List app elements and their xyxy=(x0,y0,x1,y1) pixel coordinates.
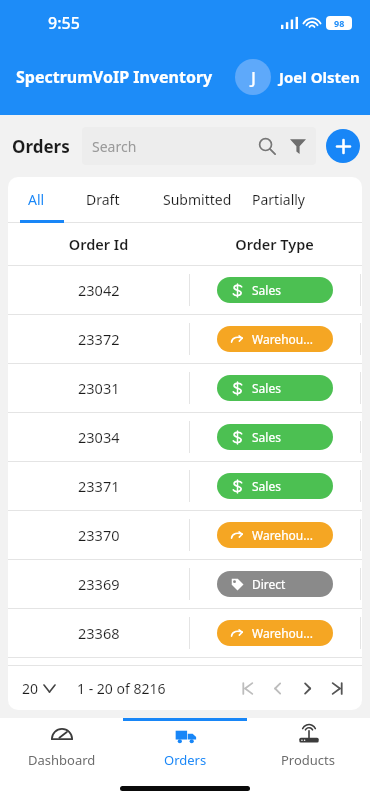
staticText: Sales xyxy=(252,478,281,494)
button[interactable]: Dashboard xyxy=(0,718,124,776)
button[interactable]: Draft xyxy=(64,177,142,221)
button[interactable]: 23031 xyxy=(8,364,362,412)
button[interactable]: 23372 xyxy=(8,315,362,363)
button[interactable]: Previous page xyxy=(266,677,288,699)
staticText: 23368 xyxy=(78,623,120,643)
staticText: SpectrumVoIP Inventory xyxy=(16,66,213,88)
button[interactable]: Next page xyxy=(296,677,318,699)
staticText: Partially Received xyxy=(252,190,362,209)
button[interactable]: Warehou... xyxy=(217,522,333,548)
staticText: Joel Olsten xyxy=(279,67,360,87)
button[interactable]: Orders xyxy=(124,718,247,776)
button[interactable]: 23371 xyxy=(8,462,362,510)
button[interactable]: Sales xyxy=(217,277,333,303)
staticText: 23034 xyxy=(78,427,120,447)
staticText: Warehou... xyxy=(252,331,313,347)
button[interactable]: Partially Received xyxy=(252,177,362,221)
button[interactable]: Products xyxy=(247,718,370,776)
button[interactable]: Add order xyxy=(326,129,360,163)
button[interactable]: 23370 xyxy=(8,511,362,559)
staticText: Direct xyxy=(252,576,286,592)
staticText: Warehou... xyxy=(252,625,313,641)
staticText: 23369 xyxy=(78,574,120,594)
staticText: Sales xyxy=(252,429,281,445)
staticText: 23372 xyxy=(78,329,120,349)
staticText: 20 xyxy=(22,679,39,698)
button[interactable]: J xyxy=(235,59,360,95)
staticText: J xyxy=(251,66,256,89)
staticText: Order Id xyxy=(8,234,189,254)
button[interactable]: Direct xyxy=(217,571,333,597)
staticText: 1 - 20 of 8216 xyxy=(77,679,166,698)
staticText: 23042 xyxy=(78,280,120,300)
button[interactable]: Submitted xyxy=(142,177,252,221)
staticText: 23370 xyxy=(78,525,120,545)
button[interactable]: 23368 xyxy=(8,609,362,657)
staticText: 23371 xyxy=(78,476,120,496)
button[interactable]: Sales xyxy=(217,473,333,499)
button[interactable]: 20 xyxy=(22,679,55,698)
button[interactable]: Sales xyxy=(217,424,333,450)
button[interactable]: Last page xyxy=(326,677,348,699)
staticText: Draft xyxy=(86,190,120,209)
button[interactable]: 23034 xyxy=(8,413,362,461)
button[interactable]: All xyxy=(8,177,64,221)
staticText: Orders xyxy=(164,751,207,769)
staticText: Products xyxy=(281,751,336,769)
staticText: Submitted xyxy=(163,190,232,209)
staticText: 9:55 xyxy=(48,12,80,34)
staticText: Warehou... xyxy=(252,527,313,543)
staticText: 23031 xyxy=(78,378,120,398)
staticText: Sales xyxy=(252,380,281,396)
button[interactable]: First page xyxy=(236,677,258,699)
button[interactable]: Sales xyxy=(217,375,333,401)
staticText: Dashboard xyxy=(28,751,96,769)
staticText: Order Type xyxy=(189,234,360,254)
button[interactable]: 23042 xyxy=(8,266,362,314)
button[interactable]: 23369 xyxy=(8,560,362,608)
button[interactable]: Warehou... xyxy=(217,326,333,352)
staticText: 98 xyxy=(334,17,345,29)
button[interactable]: Search xyxy=(82,127,316,165)
staticText: Search xyxy=(92,137,137,156)
staticText: Sales xyxy=(252,282,281,298)
staticText: Orders xyxy=(12,135,70,158)
staticText: All xyxy=(28,190,45,209)
button[interactable]: Warehou... xyxy=(217,620,333,646)
